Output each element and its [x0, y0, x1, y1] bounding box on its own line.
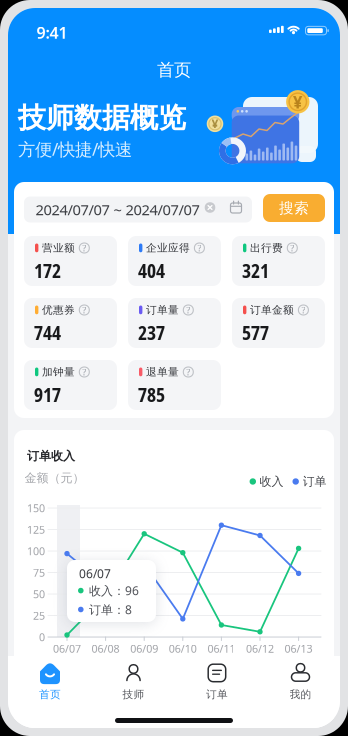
button[interactable]: 技师 [112, 663, 154, 705]
button[interactable]: 清除日期 [205, 202, 215, 213]
staticText: 出行费 [250, 241, 283, 254]
staticText: 50 [33, 587, 45, 601]
button[interactable]: 首页 [29, 663, 71, 705]
staticText: 订单 [302, 474, 326, 489]
staticText: 25 [33, 608, 45, 623]
staticText: 150 [27, 501, 45, 515]
button[interactable]: 2024/07/07 ~ 2024/07/07 [24, 196, 252, 222]
button[interactable]: 帮助 [297, 304, 309, 316]
button[interactable]: 订单 [196, 663, 238, 705]
staticText: 404 [138, 257, 165, 284]
staticText: 172 [34, 257, 61, 284]
staticText: 2024/07/07 ~ 2024/07/07 [35, 200, 199, 219]
staticText: 744 [34, 319, 61, 346]
staticText: 订单 [206, 688, 228, 701]
staticText: 917 [34, 381, 61, 408]
staticText: 搜索 [279, 199, 309, 217]
button[interactable]: 帮助 [78, 242, 90, 254]
staticText: 收入 [259, 474, 283, 489]
staticText: 06/10 [169, 641, 197, 656]
staticText: ? [82, 242, 86, 254]
staticText: 技师数据概览 [18, 101, 186, 135]
staticText: 我的 [289, 688, 311, 701]
staticText: 06/11 [207, 641, 235, 656]
staticText: 06/07 [79, 565, 111, 581]
staticText: 企业应得 [146, 241, 190, 254]
staticText: 125 [27, 522, 45, 537]
button[interactable]: 帮助 [78, 304, 90, 316]
staticText: 75 [33, 565, 45, 580]
staticText: 加钟量 [42, 365, 75, 378]
staticText: 订单金额 [250, 303, 294, 316]
button[interactable]: 选择日期 [229, 200, 243, 214]
button[interactable]: 帮助 [286, 242, 298, 254]
staticText: 金额（元） [24, 471, 84, 485]
staticText: 785 [138, 381, 165, 408]
button[interactable]: 帮助 [193, 242, 205, 254]
staticText: 06/09 [130, 641, 158, 656]
staticText: 收入：96 [89, 583, 139, 598]
staticText: ¥ [211, 116, 218, 132]
staticText: ? [197, 242, 201, 254]
staticText: 237 [138, 319, 165, 346]
button[interactable]: 帮助 [182, 304, 194, 316]
staticText: 06/13 [285, 641, 313, 656]
staticText: ? [82, 366, 86, 378]
staticText: 订单量 [146, 303, 179, 316]
staticText: ? [186, 366, 190, 378]
staticText: ? [82, 304, 86, 316]
staticText: 100 [27, 544, 45, 558]
staticText: 577 [242, 319, 269, 346]
staticText: 9:41 [36, 22, 67, 43]
staticText: 06/07 [53, 641, 81, 656]
staticText: 首页 [39, 688, 61, 701]
staticText: 订单：8 [89, 601, 132, 617]
staticText: 退单量 [146, 365, 179, 378]
staticText: 06/12 [246, 641, 274, 656]
staticText: 优惠券 [42, 303, 75, 316]
staticText: 06/08 [92, 641, 120, 656]
button[interactable]: 我的 [279, 663, 321, 705]
staticText: 首页 [157, 59, 191, 81]
staticText: ? [290, 242, 294, 254]
button[interactable]: 帮助 [182, 366, 194, 378]
staticText: ? [301, 304, 305, 316]
staticText: ? [186, 304, 190, 316]
staticText: 订单收入 [27, 449, 75, 463]
button[interactable]: 帮助 [78, 366, 90, 378]
staticText: ¥ [293, 90, 303, 113]
button[interactable]: 搜索 [263, 194, 325, 222]
staticText: 0 [39, 630, 45, 644]
staticText: 技师 [122, 688, 144, 701]
staticText: 营业额 [42, 241, 75, 254]
staticText: 321 [242, 257, 269, 284]
staticText: 方便/快捷/快速 [18, 137, 132, 160]
